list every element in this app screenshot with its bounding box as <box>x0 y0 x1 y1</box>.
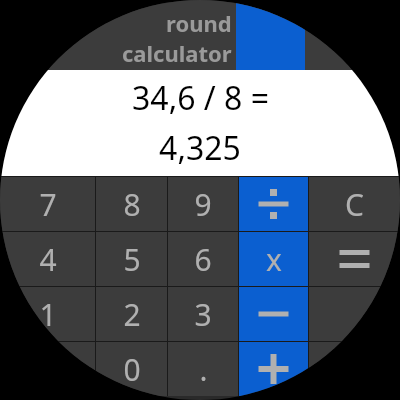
staticText: 34,6 / 8 = <box>132 76 269 120</box>
button[interactable]: 5 <box>96 232 167 286</box>
staticText: 5 <box>123 239 141 280</box>
button[interactable]: 2 <box>96 287 167 341</box>
staticText: 0 <box>123 349 141 390</box>
button[interactable]: . <box>168 342 238 396</box>
button[interactable]: Plus <box>239 342 308 396</box>
button[interactable]: Divide <box>239 177 308 231</box>
button[interactable]: 9 <box>168 177 238 231</box>
staticText: 6 <box>194 239 212 280</box>
staticText: 9 <box>194 184 212 225</box>
button[interactable] <box>309 342 400 396</box>
staticText: 4,325 <box>159 126 241 170</box>
button[interactable]: 3 <box>168 287 238 341</box>
button[interactable]: 34,6 / 8 = <box>0 70 400 176</box>
button[interactable]: 6 <box>168 232 238 286</box>
staticText: calculator <box>122 38 232 68</box>
button[interactable]: Multiply <box>239 232 308 286</box>
staticText: . <box>199 349 208 390</box>
button[interactable] <box>309 287 400 341</box>
button[interactable]: C <box>309 177 400 231</box>
staticText: 1 <box>39 294 57 335</box>
button[interactable]: 1 <box>0 287 95 341</box>
staticText: 4 <box>39 239 57 280</box>
button[interactable]: 0 <box>96 342 167 396</box>
button[interactable]: 8 <box>96 177 167 231</box>
button[interactable]: 7 <box>0 177 95 231</box>
staticText: C <box>345 184 364 225</box>
button[interactable]: 4 <box>0 232 95 286</box>
staticText: 7 <box>39 184 57 225</box>
staticText: 3 <box>194 294 212 335</box>
button[interactable] <box>0 342 95 396</box>
staticText: x <box>266 239 282 280</box>
staticText: round <box>166 8 232 38</box>
button[interactable]: Mode <box>236 0 305 70</box>
staticText: 8 <box>123 184 141 225</box>
staticText: 2 <box>123 294 141 335</box>
button[interactable]: Equals <box>309 232 400 286</box>
button[interactable]: Minus <box>239 287 308 341</box>
